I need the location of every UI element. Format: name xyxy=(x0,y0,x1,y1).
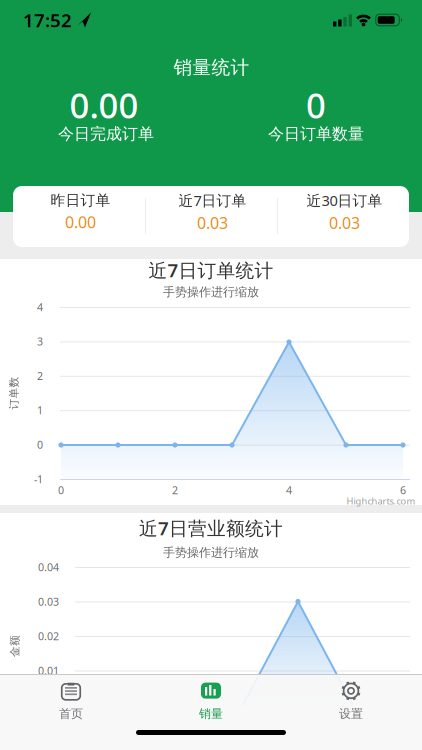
staticText: 近7日订单 xyxy=(178,191,246,210)
button[interactable]: 销量 xyxy=(141,677,281,722)
staticText: 2 xyxy=(172,483,178,497)
staticText: Highcharts.com xyxy=(346,495,415,507)
button[interactable]: 首页 xyxy=(1,677,141,722)
staticText: 近30日订单 xyxy=(306,191,382,210)
staticText: 0 xyxy=(306,82,326,128)
button[interactable]: 设置 xyxy=(281,677,421,722)
staticText: 2 xyxy=(37,369,43,383)
staticText: 0.04 xyxy=(38,560,59,574)
staticText: 0 xyxy=(58,483,64,497)
staticText: 今日完成订单 xyxy=(58,124,154,144)
staticText: 订单数 xyxy=(0,386,30,399)
staticText: 0.01 xyxy=(38,663,59,678)
staticText: 0.03 xyxy=(329,212,360,233)
staticText: 设置 xyxy=(339,706,363,721)
button[interactable]: 昨日订单 xyxy=(15,183,145,241)
button[interactable]: 近7日订单 xyxy=(147,183,277,241)
staticText: 手势操作进行缩放 xyxy=(163,285,259,299)
staticText: 0.02 xyxy=(38,629,59,643)
staticText: 3 xyxy=(37,334,43,348)
staticText: 昨日订单 xyxy=(50,191,110,209)
staticText: 17:52 xyxy=(23,8,72,32)
staticText: 0.00 xyxy=(65,211,96,233)
staticText: 0.03 xyxy=(197,212,228,233)
staticText: 0.00 xyxy=(69,82,138,128)
staticText: 今日订单数量 xyxy=(268,124,364,144)
staticText: 手势操作进行缩放 xyxy=(163,545,259,560)
button[interactable]: 近30日订单 xyxy=(279,183,409,241)
staticText: 4 xyxy=(37,300,43,314)
staticText: 首页 xyxy=(59,706,83,721)
staticText: 销量统计 xyxy=(173,56,249,79)
staticText: 近7日订单统计 xyxy=(148,258,273,282)
staticText: 销量 xyxy=(199,706,223,721)
staticText: -1 xyxy=(34,472,43,486)
staticText: 金额 xyxy=(4,639,26,652)
staticText: 0 xyxy=(37,437,43,452)
staticText: 6 xyxy=(400,483,406,497)
staticText: 1 xyxy=(37,403,43,417)
staticText: 4 xyxy=(286,483,292,497)
staticText: 0.03 xyxy=(38,594,59,609)
staticText: 近7日营业额统计 xyxy=(139,516,283,540)
